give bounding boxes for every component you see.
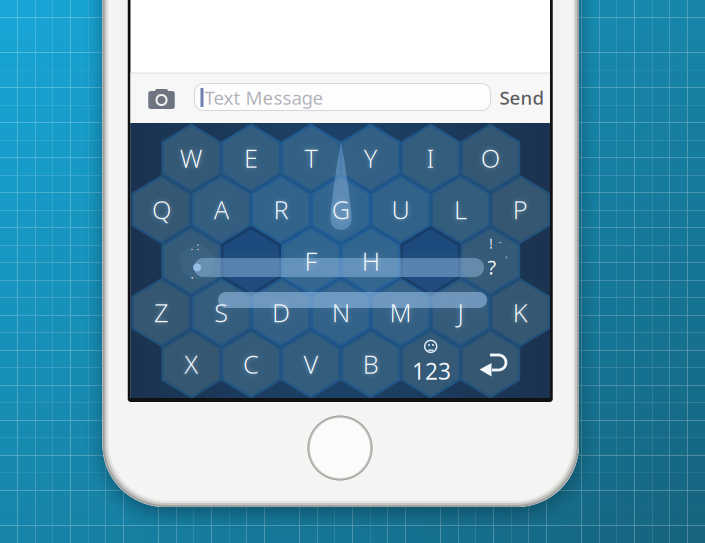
- staticText: Y: [364, 141, 378, 175]
- button[interactable]: X: [161, 330, 221, 398]
- button[interactable]: Q: [131, 175, 191, 244]
- button[interactable]: B: [341, 330, 401, 398]
- button[interactable]: C: [221, 330, 281, 398]
- button[interactable]: V: [281, 330, 341, 398]
- button[interactable]: U: [371, 175, 430, 244]
- staticText: H: [362, 244, 380, 278]
- button[interactable]: key: [401, 330, 460, 398]
- staticText: P: [513, 193, 528, 226]
- staticText: N: [332, 296, 350, 329]
- staticText: C: [243, 347, 259, 381]
- button[interactable]: key: [221, 227, 281, 295]
- button[interactable]: R: [251, 175, 311, 244]
- button[interactable]: K: [490, 278, 550, 347]
- button[interactable]: Camera: [148, 87, 175, 109]
- button[interactable]: S: [191, 278, 251, 347]
- button[interactable]: O: [460, 124, 520, 192]
- button[interactable]: G: [311, 175, 371, 244]
- button[interactable]: key: [401, 227, 460, 295]
- staticText: I: [426, 141, 434, 175]
- staticText: L: [454, 193, 467, 226]
- staticText: W: [180, 141, 203, 175]
- button[interactable]: key: [460, 227, 520, 295]
- button[interactable]: Home: [307, 415, 372, 480]
- button[interactable]: D: [251, 278, 311, 347]
- staticText: . :: [190, 239, 199, 253]
- staticText: V: [303, 347, 318, 381]
- staticText: ?: [487, 254, 496, 280]
- staticText: !: [489, 233, 493, 253]
- button[interactable]: key: [460, 330, 520, 398]
- staticText: B: [363, 347, 379, 381]
- button[interactable]: P: [490, 175, 550, 244]
- staticText: G: [332, 193, 350, 226]
- staticText: Send: [499, 85, 544, 110]
- staticText: S: [214, 296, 228, 329]
- staticText: Q: [152, 193, 171, 226]
- button[interactable]: M: [371, 278, 430, 347]
- staticText: K: [513, 296, 528, 329]
- staticText: U: [392, 193, 410, 226]
- button[interactable]: E: [221, 124, 281, 192]
- staticText: F: [304, 244, 317, 278]
- button[interactable]: N: [311, 278, 371, 347]
- button[interactable]: Y: [341, 124, 401, 192]
- button[interactable]: A: [191, 175, 251, 244]
- staticText: X: [184, 347, 198, 381]
- button[interactable]: F: [281, 227, 341, 295]
- staticText: M: [390, 296, 412, 329]
- button[interactable]: Z: [131, 278, 191, 347]
- button[interactable]: Send: [499, 85, 544, 110]
- staticText: Text Message: [204, 85, 323, 110]
- button[interactable]: key: [161, 227, 221, 295]
- staticText: ': [505, 253, 507, 267]
- staticText: 123: [412, 356, 451, 386]
- staticText: A: [214, 193, 229, 226]
- button[interactable]: L: [430, 175, 490, 244]
- staticText: O: [481, 141, 500, 175]
- staticText: E: [244, 141, 258, 175]
- staticText: T: [304, 141, 317, 175]
- staticText: R: [273, 193, 288, 226]
- staticText: D: [272, 296, 290, 329]
- staticText: -: [498, 234, 501, 248]
- staticText: .: [190, 266, 193, 282]
- button[interactable]: J: [430, 278, 490, 347]
- button[interactable]: W: [161, 124, 221, 192]
- button[interactable]: T: [281, 124, 341, 192]
- button[interactable]: H: [341, 227, 401, 295]
- button[interactable]: I: [401, 124, 460, 192]
- staticText: Z: [154, 296, 169, 329]
- staticText: J: [457, 296, 463, 329]
